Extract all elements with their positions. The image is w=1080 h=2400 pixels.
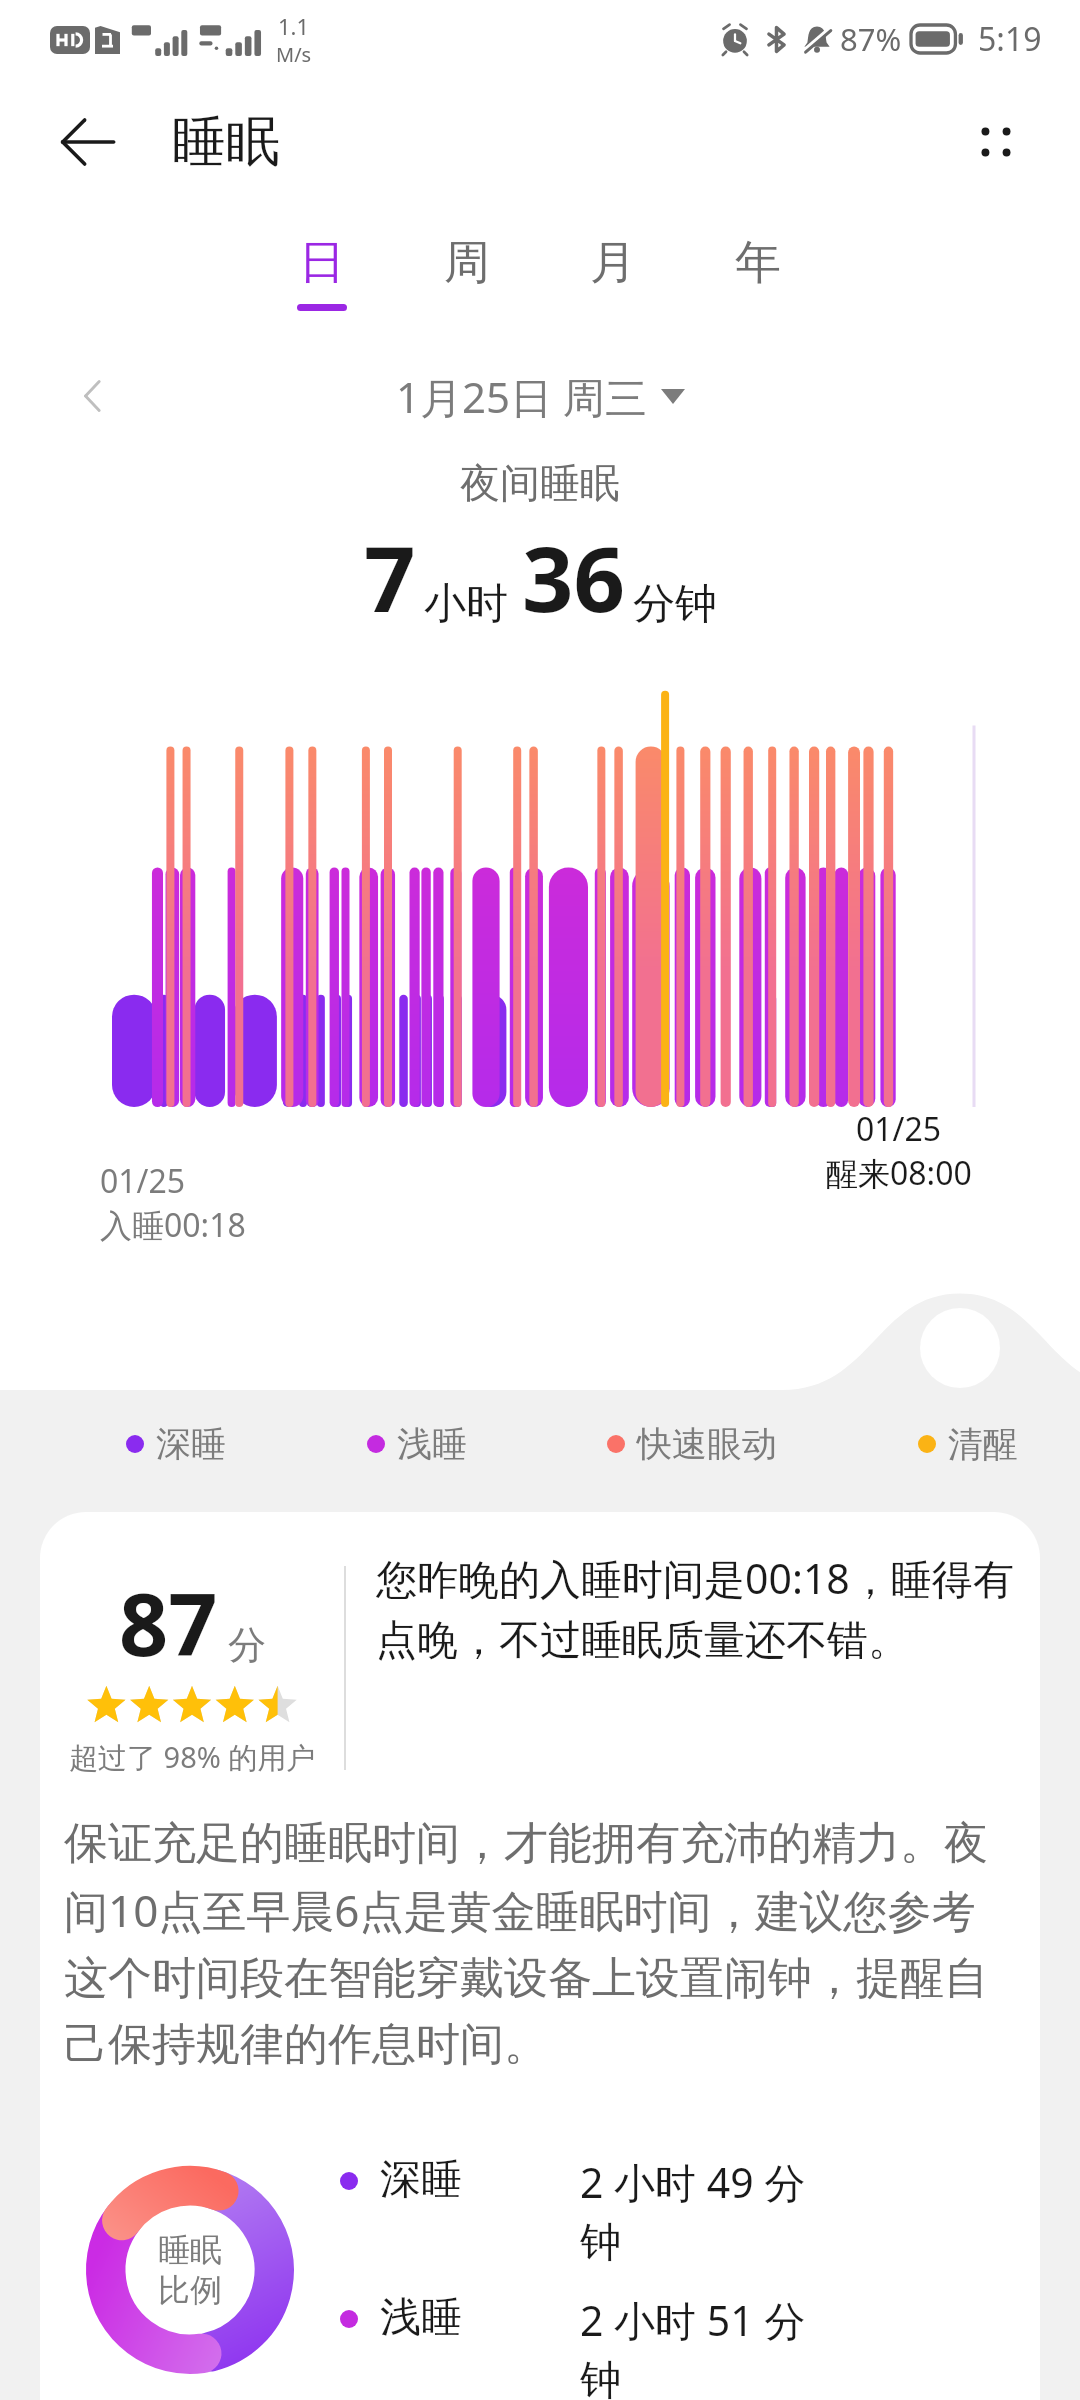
- staticText: 01/25: [856, 1107, 942, 1151]
- button[interactable]: 周: [431, 234, 503, 311]
- button[interactable]: 1月25日 周三: [396, 368, 685, 425]
- staticText: 超过了 98% 的用户: [69, 1737, 316, 1777]
- button[interactable]: Back: [46, 101, 128, 183]
- button[interactable]: 浅睡: [340, 2292, 1040, 2400]
- staticText: 日: [299, 234, 345, 292]
- staticText: 月: [590, 234, 636, 292]
- staticText: 分: [228, 1621, 266, 1669]
- staticText: 36: [522, 516, 625, 639]
- staticText: 87: [119, 1564, 218, 1681]
- staticText: 年: [735, 234, 781, 292]
- button[interactable]: 深睡: [126, 1422, 226, 1466]
- button[interactable]: More options: [952, 98, 1040, 186]
- staticText: 7: [364, 516, 416, 639]
- staticText: 深睡: [156, 1422, 226, 1466]
- staticText: 您昨晚的入睡时间是00:18，睡得有点晚，不过睡眠质量还不错。: [376, 1550, 1020, 1666]
- staticText: 分钟: [633, 578, 717, 631]
- staticText: 87%: [840, 18, 902, 60]
- staticText: 深睡: [380, 2154, 462, 2206]
- staticText: 1月25日 周三: [396, 368, 647, 425]
- button[interactable]: 月: [577, 234, 649, 311]
- staticText: 周: [444, 234, 490, 292]
- button[interactable]: 浅睡: [367, 1422, 467, 1466]
- staticText: 睡眠: [158, 2230, 222, 2270]
- staticText: 夜间睡眠: [0, 458, 1080, 508]
- staticText: 小时: [424, 578, 508, 631]
- button[interactable]: 清醒: [918, 1422, 1018, 1466]
- button[interactable]: 快速眼动: [607, 1422, 777, 1466]
- staticText: 比例: [158, 2270, 222, 2310]
- staticText: 快速眼动: [637, 1422, 777, 1466]
- button[interactable]: Previous day: [60, 364, 124, 428]
- button[interactable]: 年: [722, 234, 794, 311]
- button[interactable]: 日: [286, 234, 358, 311]
- staticText: 5:19: [978, 17, 1042, 61]
- staticText: 保证充足的睡眠时间，才能拥有充沛的精力。夜间10点至早晨6点是黄金睡眠时间，建议…: [64, 1816, 1016, 2072]
- staticText: 2 小时 49 分 钟: [580, 2154, 1040, 2268]
- staticText: 浅睡: [397, 1422, 467, 1466]
- staticText: 醒来08:00: [826, 1151, 972, 1195]
- staticText: 浅睡: [380, 2292, 462, 2344]
- staticText: 01/25: [100, 1159, 186, 1203]
- staticText: M/s: [276, 41, 312, 68]
- staticText: 睡眠: [172, 108, 280, 176]
- button[interactable]: 深睡: [340, 2154, 1040, 2268]
- staticText: 1.1: [278, 11, 310, 41]
- staticText: 清醒: [948, 1422, 1018, 1466]
- staticText: 入睡00:18: [100, 1203, 246, 1247]
- button[interactable]: Expand chart: [920, 1308, 1000, 1388]
- staticText: 2 小时 51 分 钟: [580, 2292, 1040, 2400]
